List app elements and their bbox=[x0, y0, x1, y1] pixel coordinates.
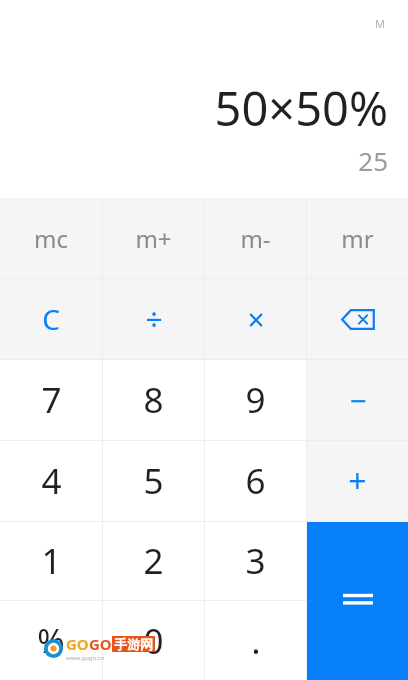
button[interactable]: 9 bbox=[205, 360, 306, 440]
staticText: ÷ bbox=[145, 299, 163, 340]
staticText: 25 bbox=[358, 143, 388, 178]
button[interactable]: 0 bbox=[103, 601, 204, 680]
button[interactable]: mc bbox=[0, 198, 102, 278]
staticText: % bbox=[37, 618, 65, 663]
staticText: C bbox=[42, 300, 60, 338]
staticText: 9 bbox=[245, 376, 266, 424]
button[interactable]: . bbox=[205, 601, 306, 680]
staticText: mc bbox=[34, 222, 68, 255]
button[interactable]: Backspace bbox=[307, 279, 408, 359]
staticText: 8 bbox=[143, 376, 164, 424]
button[interactable]: 6 bbox=[205, 441, 306, 521]
staticText: M bbox=[375, 16, 385, 31]
staticText: m+ bbox=[135, 222, 172, 255]
staticText: 2 bbox=[143, 537, 164, 585]
staticText: www.gogo.cn bbox=[66, 654, 105, 662]
staticText: 手游网 bbox=[114, 636, 153, 652]
staticText: 3 bbox=[245, 537, 266, 585]
staticText: . bbox=[251, 617, 261, 665]
button[interactable]: 1 bbox=[0, 522, 102, 600]
staticText: m- bbox=[240, 222, 271, 255]
button[interactable]: Equals bbox=[307, 522, 408, 680]
staticText: mr bbox=[341, 222, 374, 255]
button[interactable]: mr bbox=[307, 198, 408, 278]
staticText: GO bbox=[66, 634, 89, 654]
staticText: 0 bbox=[143, 617, 164, 665]
staticText: + bbox=[348, 459, 367, 503]
button[interactable]: × bbox=[205, 279, 306, 359]
staticText: GO bbox=[89, 634, 112, 654]
staticText: 7 bbox=[41, 376, 62, 424]
staticText: × bbox=[247, 299, 265, 340]
button[interactable]: 4 bbox=[0, 441, 102, 521]
button[interactable]: m- bbox=[205, 198, 306, 278]
staticText: − bbox=[349, 380, 367, 421]
button[interactable]: 5 bbox=[103, 441, 204, 521]
button[interactable]: 2 bbox=[103, 522, 204, 600]
button[interactable]: ÷ bbox=[103, 279, 204, 359]
button[interactable]: C bbox=[0, 279, 102, 359]
staticText: 6 bbox=[245, 457, 266, 505]
button[interactable]: m+ bbox=[103, 198, 204, 278]
button[interactable]: 3 bbox=[205, 522, 306, 600]
staticText: 4 bbox=[41, 457, 62, 505]
button[interactable]: 7 bbox=[0, 360, 102, 440]
staticText: 5 bbox=[143, 457, 164, 505]
button[interactable]: % bbox=[0, 601, 102, 680]
staticText: 1 bbox=[41, 537, 62, 585]
button[interactable]: + bbox=[307, 441, 408, 521]
staticText: 50×50% bbox=[214, 76, 388, 140]
button[interactable]: 8 bbox=[103, 360, 204, 440]
button[interactable]: − bbox=[307, 360, 408, 440]
